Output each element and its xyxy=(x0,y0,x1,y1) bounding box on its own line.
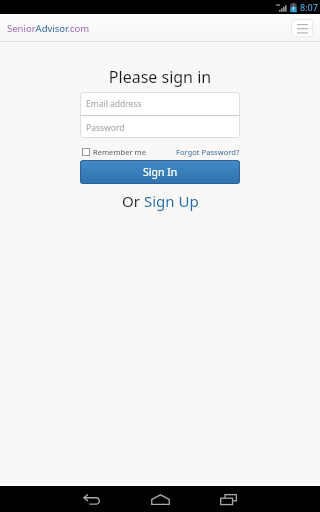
staticText: Or xyxy=(122,191,144,211)
button[interactable]: Password xyxy=(80,116,240,138)
button[interactable]: Sign Up xyxy=(144,191,199,211)
button[interactable]: Sign In xyxy=(80,160,240,184)
button[interactable]: Forgot Password? xyxy=(176,147,240,157)
staticText: Sign In xyxy=(143,165,178,179)
staticText: SeniorAdvisor.com xyxy=(7,22,90,35)
button[interactable]: Remember me xyxy=(80,147,146,157)
staticText: Email address xyxy=(86,98,142,110)
button[interactable]: Back xyxy=(68,486,116,512)
button[interactable]: Email address xyxy=(80,92,240,115)
staticText: Password xyxy=(86,122,125,134)
staticText: 8:07 xyxy=(300,1,318,13)
staticText: Please sign in xyxy=(0,66,320,88)
staticText: Remember me xyxy=(93,147,146,157)
button[interactable]: Home xyxy=(136,486,184,512)
button[interactable]: Recents xyxy=(204,486,252,512)
button[interactable]: Menu xyxy=(291,19,313,37)
